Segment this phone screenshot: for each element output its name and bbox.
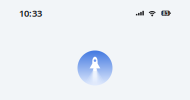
staticText: 10:33 [19, 7, 42, 19]
staticText: 83 [163, 10, 169, 17]
